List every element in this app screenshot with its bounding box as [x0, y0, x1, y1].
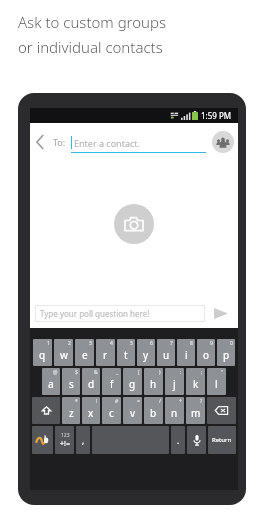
button[interactable]: Key — [187, 426, 206, 454]
staticText: u — [163, 348, 170, 362]
button[interactable]: 9 — [197, 339, 215, 366]
button[interactable]: Key — [208, 426, 236, 454]
staticText: v — [130, 406, 136, 420]
staticText: x — [88, 406, 94, 420]
button[interactable]: Type your poll question here! — [35, 305, 205, 322]
button[interactable]: 6 — [137, 339, 155, 366]
button[interactable]: # — [102, 397, 121, 424]
button[interactable]: = — [123, 397, 142, 424]
staticText: " — [221, 369, 224, 376]
staticText: 5 — [130, 340, 133, 347]
staticText: Ask to custom groups — [18, 12, 263, 32]
staticText: Enter a contact. — [74, 137, 140, 149]
button[interactable]: : — [165, 368, 184, 395]
button[interactable]: ? — [186, 397, 205, 424]
staticText: 9 — [210, 340, 213, 347]
staticText: $ — [75, 369, 78, 376]
button[interactable]: + — [165, 397, 184, 424]
staticText: c — [109, 406, 114, 420]
button[interactable]: Key — [207, 397, 236, 424]
button[interactable]: Key — [76, 426, 90, 454]
button[interactable]: 0 — [217, 339, 235, 366]
button[interactable]: Key — [171, 426, 185, 454]
button[interactable]: ( — [123, 368, 142, 395]
staticText: @ — [53, 369, 58, 376]
staticText: g — [129, 377, 136, 391]
button[interactable]: 4 — [96, 339, 115, 366]
button[interactable]: ! — [82, 397, 100, 424]
staticText: . — [177, 435, 180, 446]
button[interactable]: ; — [186, 368, 205, 395]
staticText: m — [191, 406, 201, 420]
staticText: z — [69, 406, 74, 420]
button[interactable]: Key — [32, 426, 53, 454]
staticText: h — [150, 377, 157, 391]
staticText: # — [115, 398, 119, 405]
staticText: 1 — [47, 340, 50, 347]
button[interactable]: 8 — [177, 339, 195, 366]
staticText: 6 — [150, 340, 153, 347]
staticText: +!= — [60, 439, 70, 449]
button[interactable]: / — [144, 397, 163, 424]
staticText: ; — [201, 369, 203, 376]
staticText: 123 — [61, 432, 70, 439]
staticText: or individual contacts — [18, 37, 263, 57]
button[interactable]: _ — [102, 368, 121, 395]
button[interactable]: Back — [30, 127, 50, 157]
staticText: 0 — [230, 340, 233, 347]
staticText: n — [171, 406, 178, 420]
staticText: f — [110, 377, 114, 391]
staticText: _ — [116, 369, 119, 376]
staticText: a — [48, 377, 54, 391]
button[interactable]: Key — [32, 397, 60, 424]
button[interactable]: Choose contacts — [212, 131, 234, 153]
staticText: q — [39, 348, 46, 362]
staticText: Type your poll question here! — [40, 308, 150, 319]
button[interactable]: 7 — [157, 339, 175, 366]
staticText: y — [143, 348, 149, 362]
staticText: ! — [96, 398, 98, 405]
staticText: 4 — [110, 340, 113, 347]
staticText: ( — [138, 369, 140, 376]
staticText: = — [137, 398, 140, 405]
staticText: w — [60, 348, 68, 362]
button[interactable]: 1 — [33, 339, 52, 366]
staticText: , — [82, 435, 85, 446]
staticText: + — [179, 398, 182, 405]
staticText: / — [159, 398, 161, 405]
button[interactable]: 3 — [75, 339, 94, 366]
staticText: 2 — [68, 340, 71, 347]
button[interactable]: & — [82, 368, 100, 395]
staticText: 3 — [89, 340, 92, 347]
button[interactable]: " — [207, 368, 226, 395]
button[interactable]: 5 — [117, 339, 135, 366]
staticText: 7 — [170, 340, 173, 347]
staticText: ) — [159, 369, 161, 376]
staticText: * — [75, 398, 78, 405]
button[interactable]: Send — [211, 303, 231, 323]
staticText: k — [193, 377, 199, 391]
staticText: To: — [53, 136, 66, 148]
staticText: Return — [212, 436, 232, 444]
button[interactable]: * — [62, 397, 80, 424]
staticText: l — [215, 377, 218, 391]
staticText: & — [94, 369, 98, 376]
button[interactable]: @ — [42, 368, 60, 395]
button[interactable]: $ — [62, 368, 80, 395]
button[interactable]: 2 — [54, 339, 73, 366]
staticText: t — [124, 348, 128, 362]
staticText: : — [180, 369, 182, 376]
button[interactable]: Key — [55, 426, 74, 454]
staticText: ? — [200, 398, 203, 405]
staticText: j — [173, 377, 176, 391]
button[interactable]: Enter a contact. — [71, 131, 206, 153]
staticText: i — [185, 348, 188, 362]
staticText: o — [203, 348, 210, 362]
staticText: b — [150, 406, 157, 420]
staticText: d — [88, 377, 95, 391]
staticText: 8 — [190, 340, 193, 347]
button[interactable]: Add photo — [114, 204, 154, 244]
button[interactable]: ) — [144, 368, 163, 395]
staticText: e — [82, 348, 88, 362]
